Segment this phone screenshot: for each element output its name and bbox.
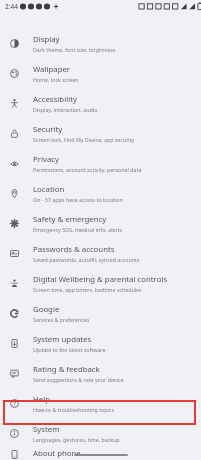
staticText: 2:44 bbox=[5, 2, 18, 11]
button[interactable]: Help bbox=[0, 388, 201, 418]
staticText: Display, interaction, audio bbox=[33, 106, 98, 113]
staticText: Safety & emergency bbox=[33, 214, 107, 225]
staticText: How-to & troubleshooting topics bbox=[33, 406, 114, 413]
staticText: Privacy bbox=[33, 154, 60, 165]
staticText: Emergency SOS, medical info, alerts bbox=[33, 226, 123, 233]
staticText: On - 37 apps have access to location bbox=[33, 196, 123, 203]
staticText: System updates bbox=[33, 334, 92, 345]
button[interactable]: Privacy bbox=[0, 148, 201, 178]
staticText: System bbox=[33, 424, 60, 435]
staticText: Saved passwords, autofill, synced accoun… bbox=[33, 256, 140, 263]
staticText: Screen lock, Find My Device, app securit… bbox=[33, 136, 135, 143]
button[interactable]: Passwords & accounts bbox=[0, 238, 201, 268]
button[interactable]: Google bbox=[0, 298, 201, 328]
staticText: Services & preferences bbox=[33, 316, 90, 323]
button[interactable]: Security bbox=[0, 118, 201, 148]
staticText: Wallpaper bbox=[33, 64, 71, 75]
button[interactable]: Rating & feedback bbox=[0, 358, 201, 388]
staticText: Home, lock screen bbox=[33, 76, 79, 83]
staticText: Send suggestions & rate your device bbox=[33, 376, 124, 383]
button[interactable]: System bbox=[0, 418, 201, 448]
staticText: Accessibility bbox=[33, 94, 77, 105]
staticText: Languages, gestures, time, backup bbox=[33, 436, 120, 443]
staticText: Security bbox=[33, 124, 63, 135]
staticText: Digital Wellbeing & parental controls bbox=[33, 274, 168, 285]
staticText: Permissions, account activity, personal … bbox=[33, 166, 142, 173]
staticText: Update to the latest software bbox=[33, 346, 106, 353]
staticText: Display bbox=[33, 34, 60, 45]
button[interactable]: System updates bbox=[0, 328, 201, 358]
staticText: Help bbox=[33, 394, 50, 405]
staticText: Dark theme, font size, brightness bbox=[33, 46, 116, 53]
staticText: Passwords & accounts bbox=[33, 244, 115, 255]
button[interactable]: Digital Wellbeing & parental controls bbox=[0, 268, 201, 298]
staticText: Rating & feedback bbox=[33, 364, 100, 375]
staticText: Location bbox=[33, 184, 65, 195]
button[interactable]: Display bbox=[0, 28, 201, 58]
button[interactable]: About phone bbox=[0, 448, 201, 460]
button[interactable]: Accessibility bbox=[0, 88, 201, 118]
staticText: Google bbox=[33, 304, 60, 315]
staticText: Screen time, app timers, bedtime schedul… bbox=[33, 286, 142, 293]
button[interactable]: Safety & emergency bbox=[0, 208, 201, 238]
staticText: About phone bbox=[33, 448, 81, 459]
button[interactable]: Location bbox=[0, 178, 201, 208]
button[interactable]: Wallpaper bbox=[0, 58, 201, 88]
